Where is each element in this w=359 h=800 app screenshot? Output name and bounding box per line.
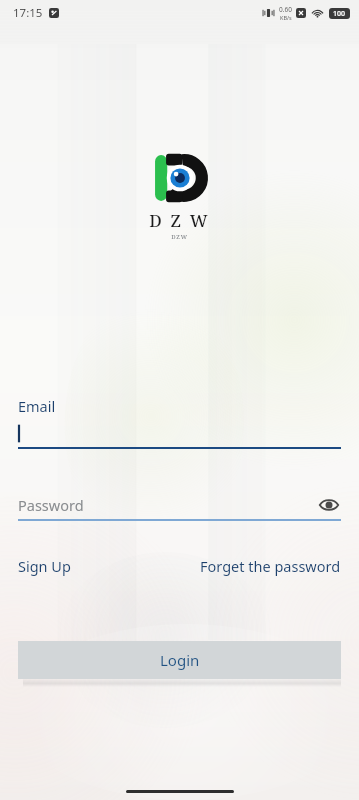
- staticText: Sign Up: [18, 556, 71, 576]
- staticText: 17:15: [13, 5, 43, 21]
- staticText: 0.60: [279, 5, 292, 14]
- staticText: Email: [18, 396, 56, 416]
- staticText: DZW: [171, 233, 188, 241]
- button[interactable]: Show password: [317, 494, 341, 516]
- staticText: Password: [18, 495, 317, 515]
- button[interactable]: Password: [18, 494, 341, 521]
- staticText: D Z W: [149, 209, 210, 232]
- staticText: Login: [160, 650, 200, 670]
- button[interactable]: Login: [18, 641, 341, 679]
- staticText: Forget the password: [200, 556, 341, 576]
- button[interactable]: Sign Up: [18, 554, 71, 578]
- button[interactable]: Forget the password: [200, 554, 341, 578]
- button[interactable]: Email: [18, 396, 341, 449]
- staticText: KB/s: [280, 14, 292, 21]
- staticText: 100: [333, 9, 346, 19]
